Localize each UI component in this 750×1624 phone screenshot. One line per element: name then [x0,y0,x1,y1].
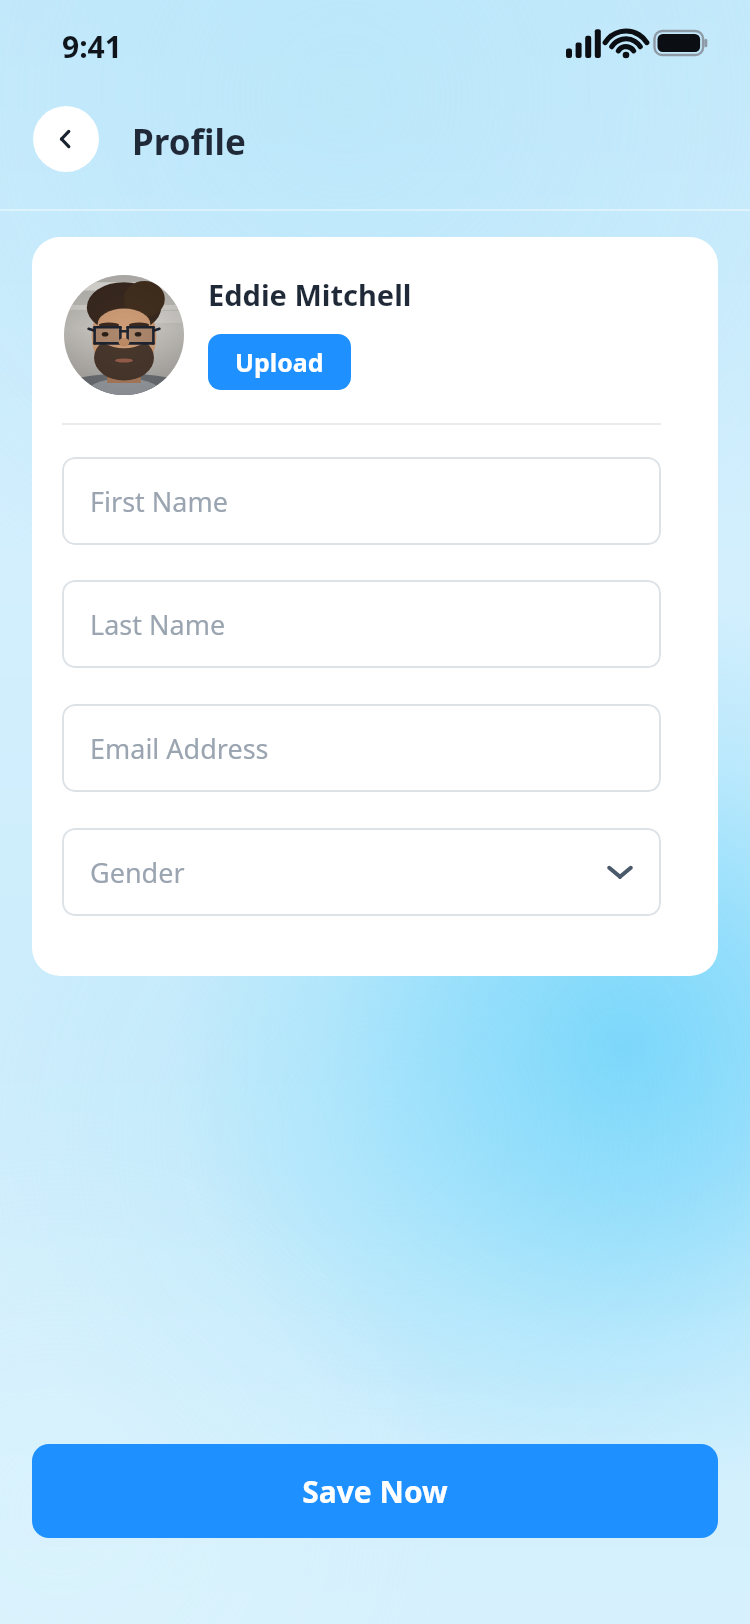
staticText: Upload [235,345,324,379]
button[interactable]: First Name [62,457,661,545]
staticText: 9:41 [62,26,122,67]
button[interactable]: Gender [62,828,661,916]
button[interactable]: Profile photo [64,275,184,395]
button[interactable]: Save Now [32,1444,718,1538]
staticText: Gender [90,854,185,891]
staticText: First Name [90,483,228,520]
button[interactable]: Upload [208,334,351,390]
button[interactable]: Email Address [62,704,661,792]
staticText: Eddie Mitchell [208,275,412,314]
staticText: Last Name [90,606,226,643]
button[interactable]: Last Name [62,580,661,668]
staticText: Email Address [90,730,269,767]
staticText: Profile [132,118,246,166]
button[interactable]: Back [33,106,99,172]
staticText: Save Now [302,1471,448,1512]
